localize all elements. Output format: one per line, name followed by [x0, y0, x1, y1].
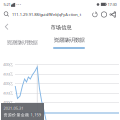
- staticText: 17:30: [107, 2, 116, 7]
- staticText: 市场信息: [51, 24, 71, 31]
- staticText: 资源指标月数据: [54, 37, 84, 43]
- button[interactable]: Back: [2, 21, 13, 33]
- staticText: 400亿: [3, 90, 13, 96]
- button[interactable]: Reload: [91, 11, 98, 18]
- button[interactable]: Share: [109, 11, 116, 18]
- staticText: 400亿: [3, 100, 13, 105]
- button[interactable]: Stop: [100, 11, 107, 18]
- staticText: 400亿: [3, 81, 13, 86]
- button[interactable]: 资源指标月数据: [0, 36, 45, 49]
- staticText: 400亿: [3, 62, 13, 67]
- staticText: 5:21: [3, 2, 10, 7]
- staticText: ⋯: [16, 1, 21, 8]
- staticText: 400亿: [3, 71, 13, 77]
- staticText: 2021-05-31: [3, 106, 23, 111]
- staticText: 资源指标月数据: [7, 39, 37, 46]
- staticText: 资源价量金额 1,159: [3, 112, 41, 117]
- staticText: 111.1.29.91.88/guid/WebJqFyAction_t: [12, 12, 80, 17]
- button[interactable]: 资源指标月数据: [46, 33, 92, 51]
